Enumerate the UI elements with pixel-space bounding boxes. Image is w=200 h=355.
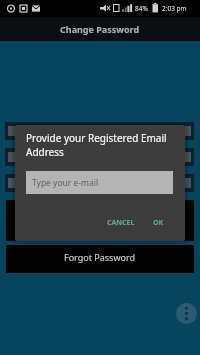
button[interactable]: Forgot Password (6, 245, 194, 273)
staticText: Change Password (60, 23, 140, 35)
button[interactable]: CANCEL (103, 214, 139, 232)
staticText: Provide your Registered Email Address (26, 131, 167, 159)
staticText: CANCEL (107, 218, 135, 228)
button[interactable]: Type your e-mail (26, 171, 173, 194)
staticText: OK (153, 218, 164, 228)
staticText: 84% (135, 4, 148, 13)
staticText: Forgot Password (64, 251, 136, 263)
staticText: Type your e-mail (32, 177, 99, 189)
button[interactable] (176, 303, 197, 324)
staticText: 2:03 pm (162, 4, 187, 13)
button[interactable]: OK (149, 214, 168, 232)
